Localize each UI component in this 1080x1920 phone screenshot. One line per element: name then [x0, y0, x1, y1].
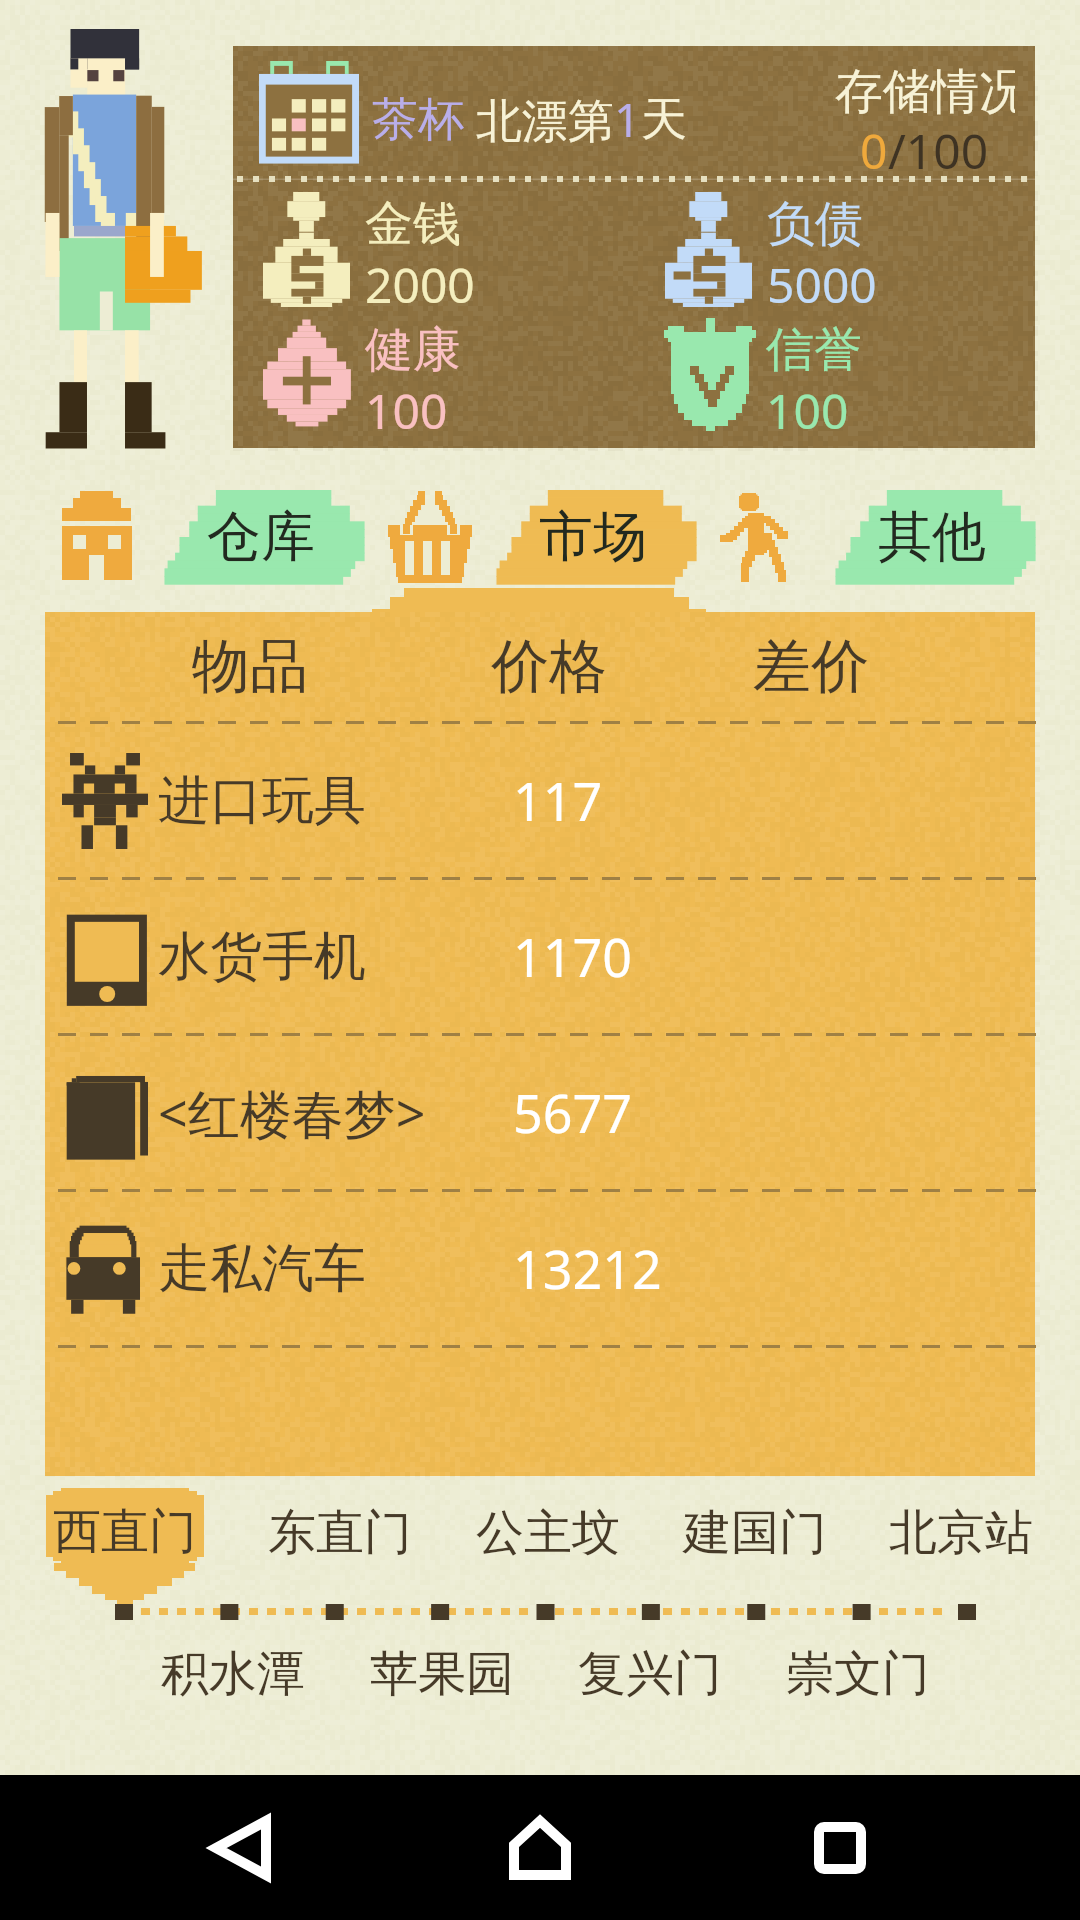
staticText: 117	[513, 765, 603, 836]
button[interactable]: 建国门	[683, 1498, 833, 1568]
staticText: 5000	[767, 252, 877, 317]
button[interactable]: 苹果园	[370, 1639, 520, 1709]
button[interactable]: Recents	[785, 1785, 895, 1910]
staticText: 100	[365, 378, 448, 443]
staticText: <红楼春梦>	[158, 1077, 426, 1148]
staticText: 价格	[491, 630, 607, 703]
button[interactable]: 其他	[828, 490, 1036, 584]
staticText: 市场	[539, 503, 647, 571]
staticText: 建国门	[683, 1503, 827, 1563]
staticText: 差价	[753, 630, 869, 703]
button[interactable]: 水货手机	[45, 881, 1035, 1032]
staticText: 存储情况	[835, 62, 1015, 116]
staticText: 天	[641, 91, 687, 149]
staticText: 苹果园	[370, 1644, 514, 1704]
button[interactable]: 北京站	[889, 1498, 1039, 1568]
staticText: 0	[860, 118, 888, 172]
button[interactable]: 移动	[715, 485, 795, 590]
staticText: 东直门	[268, 1503, 412, 1563]
staticText: 北漂第	[464, 88, 614, 151]
button[interactable]: 仓库	[157, 490, 365, 584]
button[interactable]: 西直门	[46, 1487, 204, 1607]
button[interactable]: 复兴门	[578, 1639, 728, 1709]
button[interactable]: 积水潭	[161, 1639, 311, 1709]
staticText: 崇文门	[786, 1644, 930, 1704]
staticText: 金钱	[365, 194, 461, 254]
staticText: 走私汽车	[158, 1236, 366, 1302]
button[interactable]: 住宅	[55, 485, 140, 590]
staticText: 13212	[513, 1233, 662, 1304]
button[interactable]: Back	[185, 1785, 295, 1910]
staticText: 西直门	[53, 1502, 197, 1562]
staticText: 公主坟	[476, 1503, 620, 1563]
button[interactable]: 崇文门	[786, 1639, 936, 1709]
staticText: 水货手机	[158, 924, 366, 990]
button[interactable]: 市场	[385, 485, 475, 590]
button[interactable]: 进口玩具	[45, 725, 1035, 876]
staticText: 物品	[192, 630, 308, 703]
staticText: 2000	[365, 252, 475, 317]
staticText: 5677	[513, 1077, 632, 1148]
staticText: 积水潭	[161, 1644, 305, 1704]
button[interactable]: Home	[485, 1785, 595, 1910]
staticText: 1	[614, 88, 641, 151]
staticText: 信誉	[766, 320, 862, 380]
staticText: 仓库	[207, 503, 315, 571]
staticText: 其他	[878, 503, 986, 571]
staticText: 100	[766, 378, 849, 443]
staticText: 复兴门	[578, 1644, 722, 1704]
staticText: 进口玩具	[158, 768, 366, 834]
staticText: /100	[888, 118, 989, 172]
button[interactable]: 公主坟	[476, 1498, 626, 1568]
button[interactable]: 走私汽车	[45, 1193, 1035, 1344]
staticText: 1170	[513, 921, 632, 992]
staticText: 茶杯	[372, 91, 464, 149]
button[interactable]: <红楼春梦>	[45, 1037, 1035, 1188]
staticText: 负债	[767, 194, 863, 254]
button[interactable]: 东直门	[268, 1498, 418, 1568]
button[interactable]: 市场	[489, 490, 697, 584]
staticText: 北京站	[889, 1503, 1033, 1563]
staticText: 健康	[365, 320, 461, 380]
